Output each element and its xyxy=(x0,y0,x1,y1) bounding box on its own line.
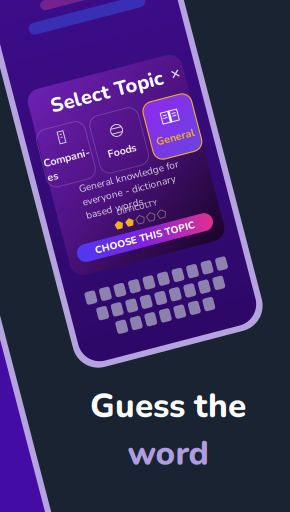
staticText: Foods xyxy=(108,143,137,158)
staticText: General knowledge for everyone - diction… xyxy=(72,170,175,211)
button[interactable]: CHOOSE THIS TOPIC xyxy=(53,231,193,249)
staticText: CHOOSE THIS TOPIC xyxy=(72,233,175,247)
staticText: DIFFICULTY xyxy=(102,204,144,214)
staticText: Guess the xyxy=(90,383,246,429)
button[interactable]: General xyxy=(153,110,203,169)
staticText: word xyxy=(127,431,208,476)
button[interactable]: Close xyxy=(186,81,203,98)
staticText: Companies xyxy=(44,136,92,165)
staticText: General xyxy=(158,143,197,158)
staticText: Select Topic xyxy=(65,76,181,103)
button[interactable]: Foods xyxy=(98,110,148,169)
button[interactable]: Companies xyxy=(43,110,93,169)
